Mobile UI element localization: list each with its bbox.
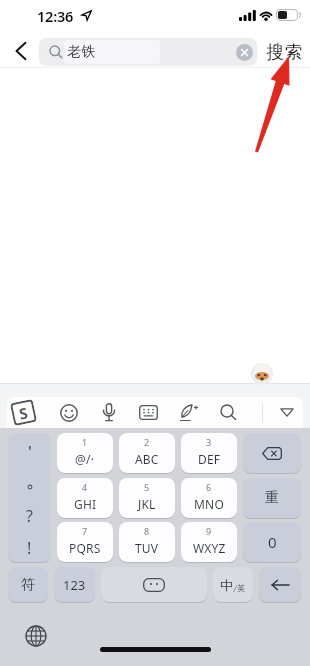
button[interactable]: 符 — [8, 567, 48, 602]
staticText: 2 — [144, 436, 150, 448]
button[interactable]: 2 — [119, 433, 175, 473]
staticText: MNO — [194, 496, 224, 512]
staticText: TUV — [135, 540, 159, 556]
button[interactable]: 123 — [54, 567, 95, 602]
staticText: 4 — [82, 481, 88, 493]
staticText: S — [17, 402, 30, 424]
button[interactable] — [259, 567, 301, 602]
button[interactable]: 5 — [119, 478, 175, 518]
staticText: 重 — [265, 489, 279, 507]
staticText: 0 — [268, 532, 277, 552]
button[interactable]: 4 — [57, 478, 113, 518]
staticText: 1 — [82, 436, 88, 448]
button[interactable] — [8, 433, 51, 562]
button[interactable]: S — [10, 399, 37, 426]
button[interactable]: 8 — [119, 522, 175, 562]
staticText: 搜索 — [266, 41, 303, 63]
button[interactable]: 0 — [243, 522, 301, 562]
staticText: 符 — [21, 576, 35, 594]
staticText: JKL — [138, 496, 156, 512]
staticText: 中 — [220, 577, 233, 593]
staticText: 12:36 — [37, 6, 74, 26]
button[interactable] — [136, 400, 161, 425]
staticText: 7 — [82, 525, 88, 537]
button[interactable]: 6 — [181, 478, 237, 518]
button[interactable]: 9 — [181, 522, 237, 562]
staticText: 9 — [206, 525, 212, 537]
button[interactable] — [20, 620, 51, 651]
button[interactable] — [216, 400, 241, 425]
button[interactable] — [8, 38, 34, 64]
staticText: 5 — [144, 481, 150, 493]
staticText: PQRS — [69, 540, 101, 556]
staticText: GHI — [74, 496, 97, 512]
button[interactable] — [101, 567, 207, 602]
staticText: 3 — [206, 436, 212, 448]
staticText: DEF — [198, 451, 221, 467]
button[interactable]: 重 — [243, 478, 301, 518]
staticText: ! — [27, 537, 32, 559]
staticText: 123 — [63, 576, 86, 594]
button[interactable] — [274, 400, 299, 425]
button[interactable]: 搜索 — [261, 38, 307, 66]
staticText: 6 — [206, 481, 212, 493]
staticText: /英 — [233, 583, 246, 593]
button[interactable]: 中 — [213, 567, 253, 602]
button[interactable] — [56, 400, 81, 425]
button[interactable]: 1 — [57, 433, 113, 473]
staticText: 老铁 — [67, 43, 97, 61]
staticText: 8 — [144, 525, 150, 537]
staticText: ? — [26, 505, 33, 527]
staticText: @/· — [75, 451, 95, 467]
button[interactable] — [176, 400, 201, 425]
button[interactable] — [243, 433, 301, 473]
button[interactable] — [236, 44, 253, 61]
button[interactable]: 老铁 — [39, 38, 257, 66]
button[interactable]: 7 — [57, 522, 113, 562]
button[interactable] — [96, 400, 121, 425]
staticText: WXYZ — [193, 540, 226, 556]
button[interactable]: 3 — [181, 433, 237, 473]
staticText: ' — [28, 441, 32, 461]
staticText: ABC — [135, 451, 159, 467]
